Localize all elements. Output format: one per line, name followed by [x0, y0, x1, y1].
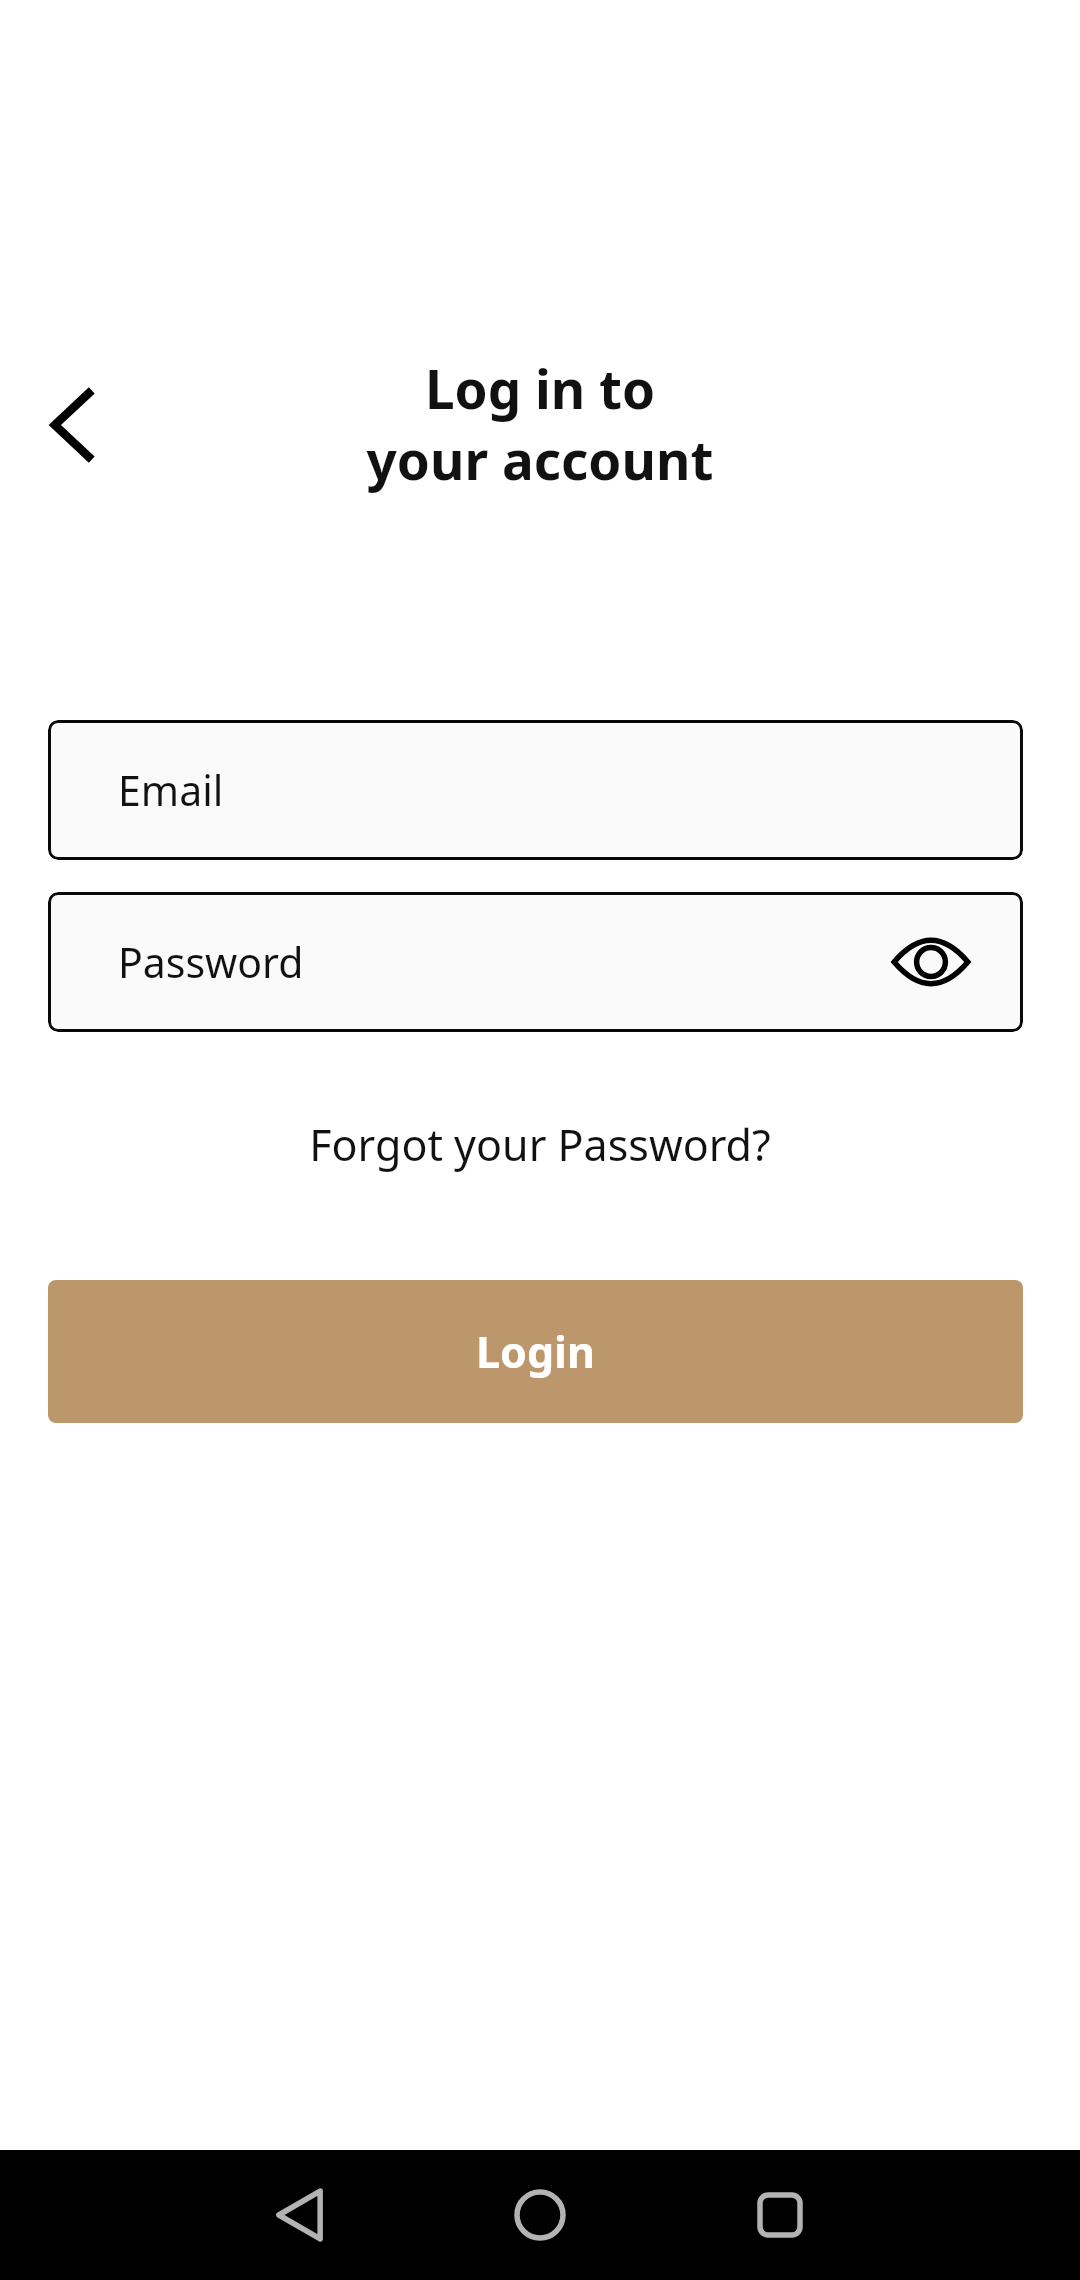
button[interactable]: Email	[48, 720, 1023, 860]
button[interactable]: Show password	[877, 920, 985, 1004]
staticText: Log in to your account	[0, 352, 1080, 495]
button[interactable]: Back	[240, 2155, 360, 2275]
staticText: Login	[476, 1322, 595, 1381]
staticText: Forgot your Password?	[309, 1115, 771, 1174]
button[interactable]: Forgot your Password?	[0, 1108, 1080, 1180]
staticText: Email	[118, 762, 224, 818]
button[interactable]: Recent apps	[720, 2155, 840, 2275]
staticText: Password	[118, 934, 304, 990]
button[interactable]: Login	[48, 1280, 1023, 1423]
button[interactable]: Home	[480, 2155, 600, 2275]
button[interactable]: Back	[20, 373, 124, 477]
button[interactable]: Password	[48, 892, 1023, 1032]
